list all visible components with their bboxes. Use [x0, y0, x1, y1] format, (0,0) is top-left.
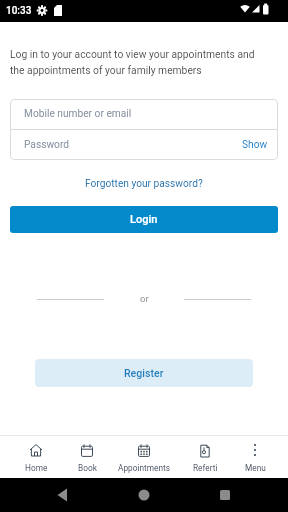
staticText: Login [130, 213, 158, 226]
button[interactable]: Login [10, 206, 278, 233]
staticText: or [140, 293, 149, 304]
button[interactable]: Book [60, 437, 114, 477]
staticText: Home [25, 463, 48, 473]
button[interactable]: Register [35, 359, 253, 387]
button[interactable]: Referti [178, 437, 232, 477]
button[interactable]: Appointments [117, 437, 171, 477]
staticText: Menu [245, 463, 266, 473]
staticText: Book [78, 463, 97, 473]
button[interactable]: Password [10, 130, 278, 160]
staticText: Password [24, 139, 69, 151]
button[interactable]: Menu [228, 437, 282, 477]
staticText: Log in to your account to view your appo… [10, 48, 255, 76]
staticText: Referti [193, 463, 218, 473]
button[interactable]: Home [9, 437, 63, 477]
staticText: Mobile number or email [24, 108, 132, 120]
staticText: 10:33 [6, 5, 32, 17]
staticText: Appointments [118, 463, 171, 473]
staticText: Register [124, 367, 164, 379]
button[interactable]: Show [242, 139, 268, 151]
button[interactable]: Mobile number or email [10, 99, 278, 129]
button[interactable]: Forgotten your password? [83, 176, 205, 192]
